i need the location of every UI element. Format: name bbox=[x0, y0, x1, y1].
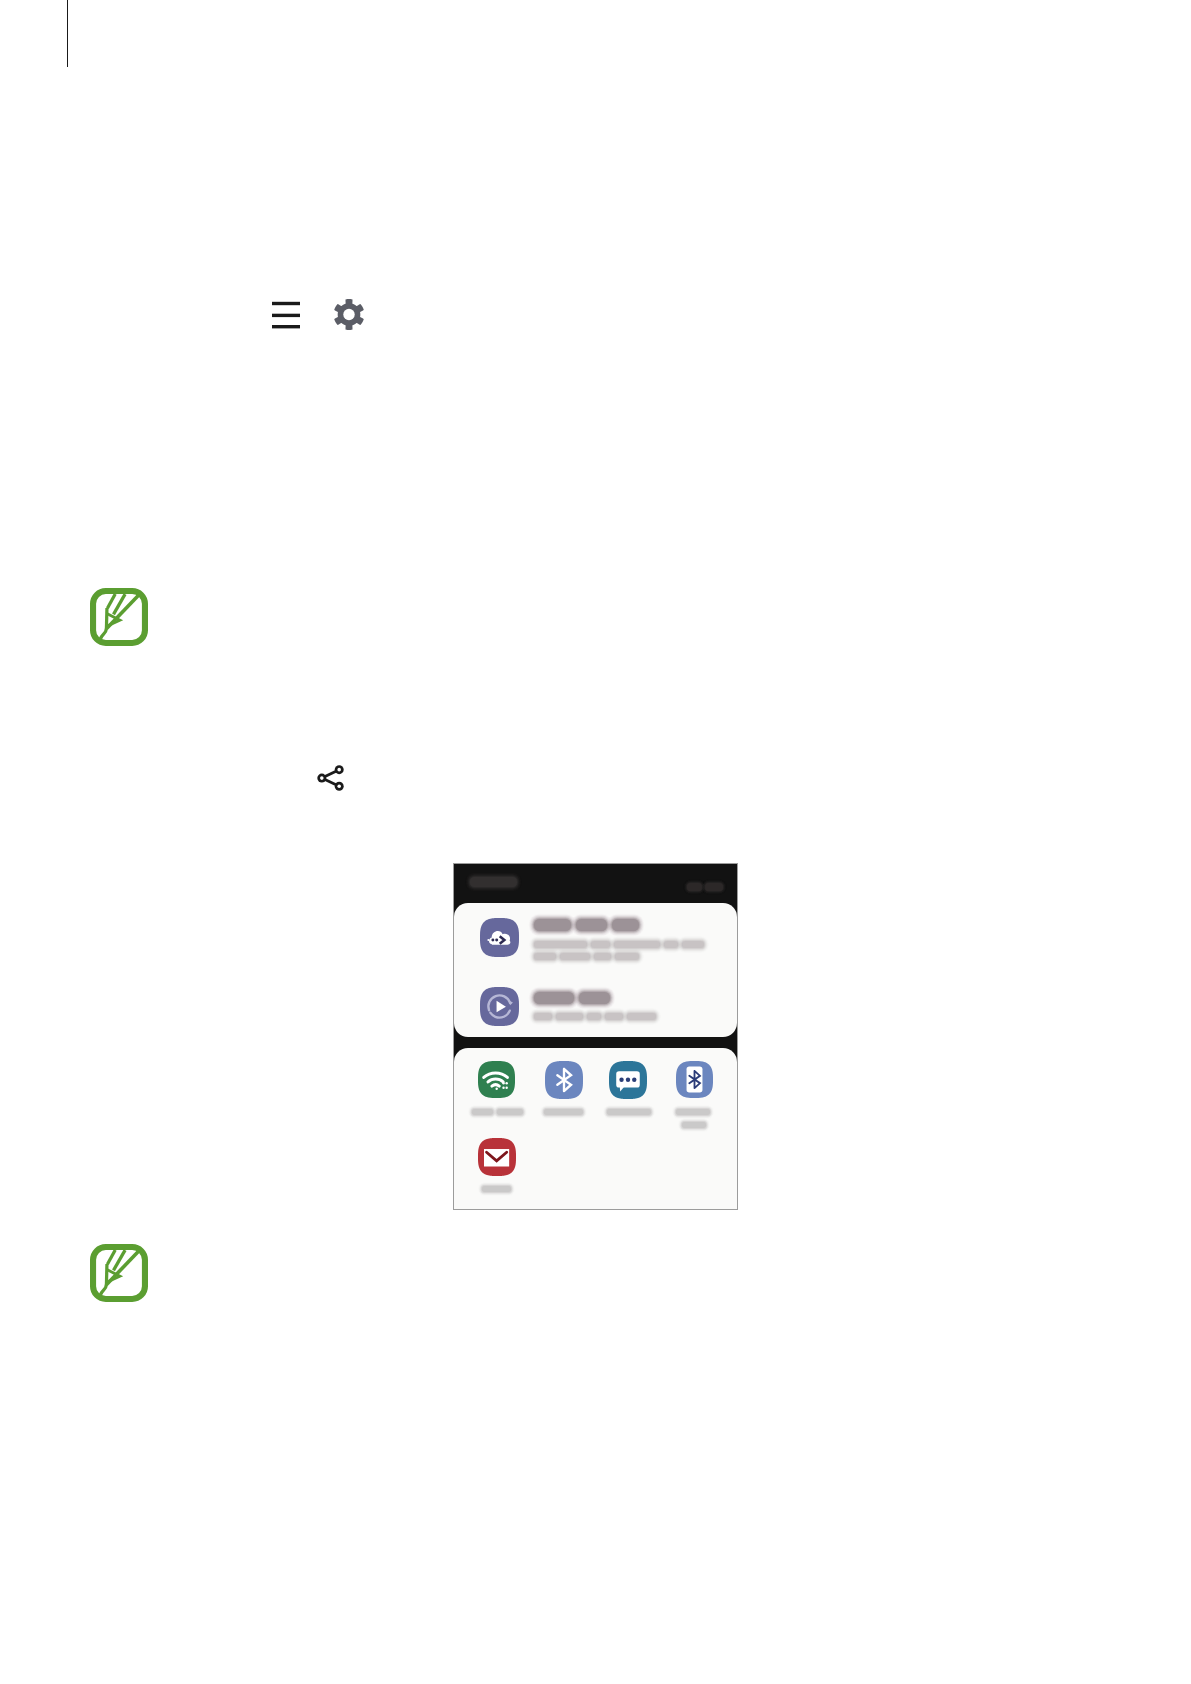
other: Note bbox=[90, 1244, 148, 1302]
button[interactable]: Share large files bbox=[454, 903, 737, 970]
button[interactable]: Smart View bbox=[454, 970, 737, 1037]
button[interactable]: Email bbox=[478, 1138, 516, 1176]
button[interactable]: Wi-Fi Direct bbox=[478, 1061, 515, 1098]
button[interactable]: Settings bbox=[335, 299, 363, 330]
button[interactable]: Share bbox=[316, 763, 345, 792]
other: Note bbox=[90, 588, 148, 646]
button[interactable]: Bluetooth tethering bbox=[676, 1061, 713, 1098]
button[interactable]: Messages bbox=[609, 1061, 647, 1099]
button[interactable]: Menu bbox=[272, 301, 300, 329]
button[interactable]: Bluetooth bbox=[545, 1061, 583, 1099]
